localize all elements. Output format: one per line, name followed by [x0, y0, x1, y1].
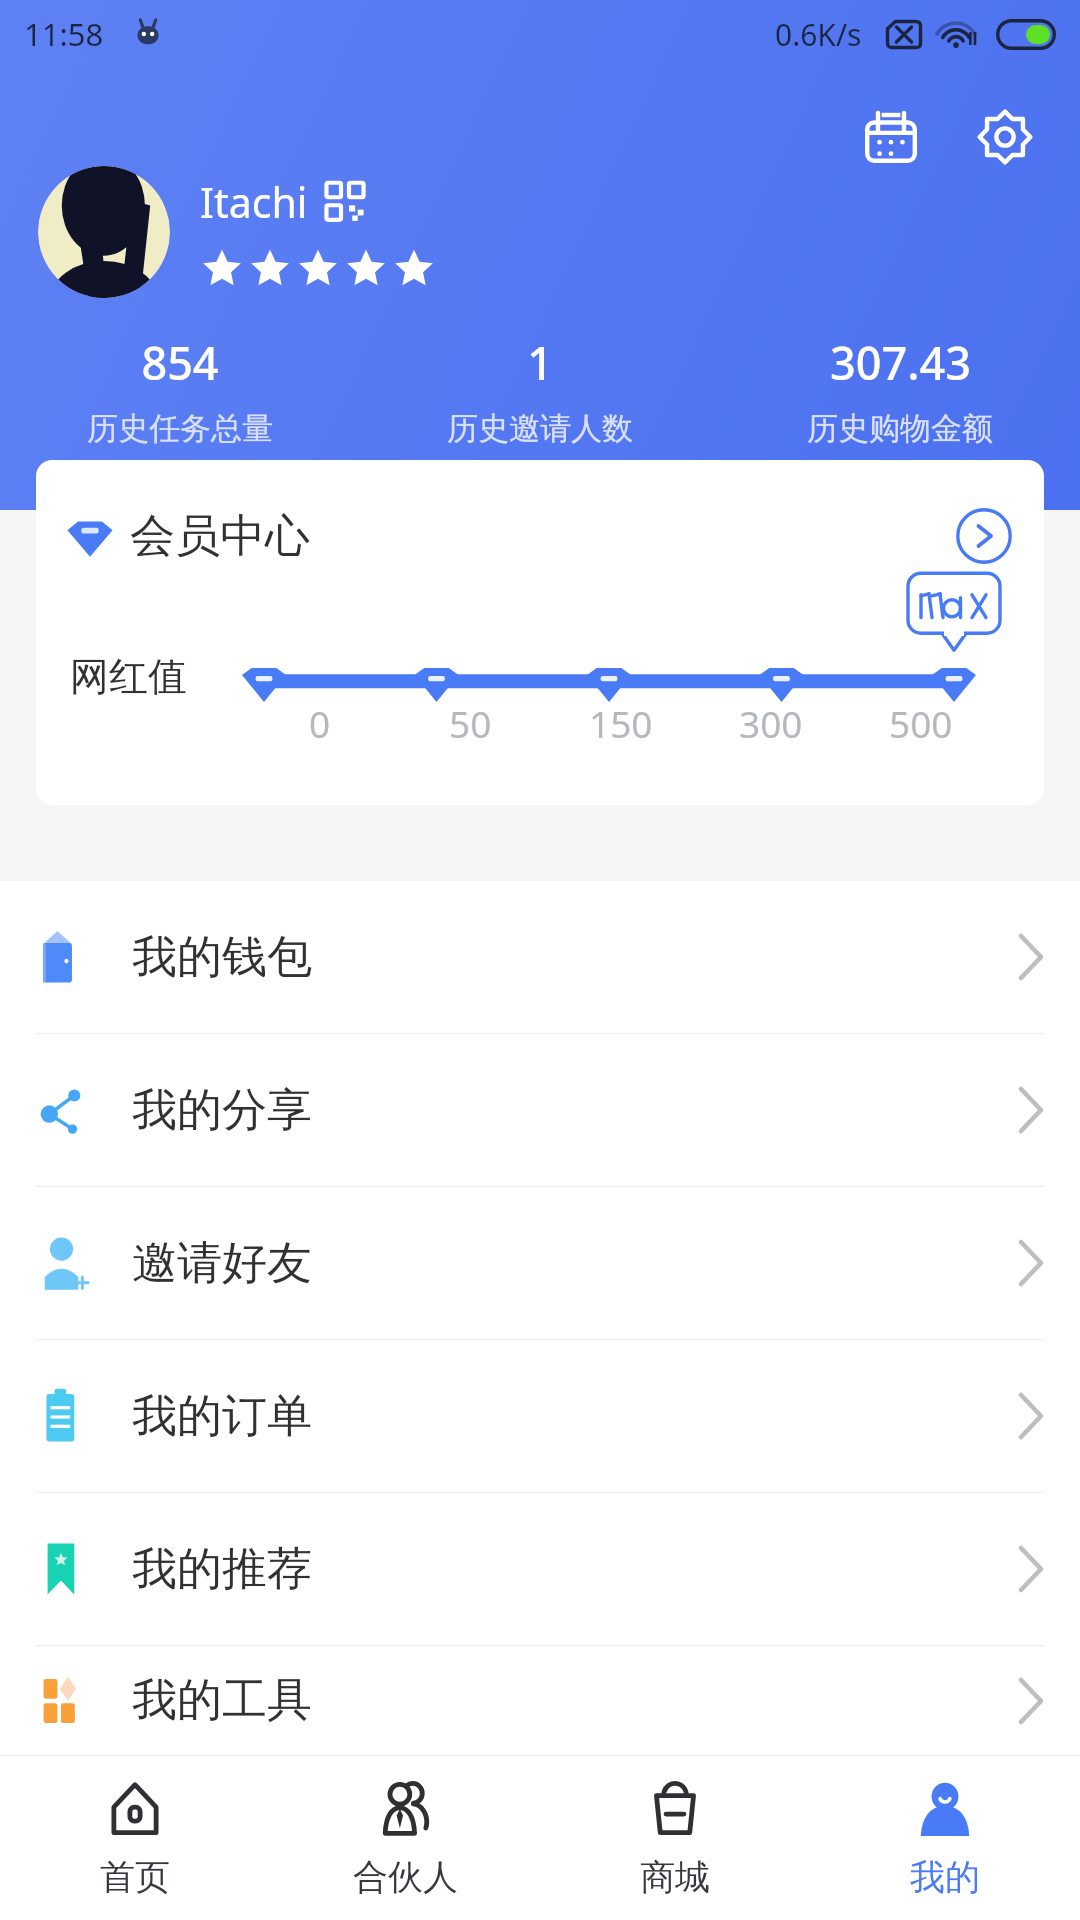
- button[interactable]: Open member center: [954, 506, 1014, 566]
- button[interactable]: 我的分享: [0, 1034, 1080, 1186]
- button[interactable]: 首页: [0, 1756, 270, 1920]
- staticText: 0: [309, 698, 331, 748]
- button[interactable]: 合伙人: [270, 1756, 540, 1920]
- staticText: 0.6K/s: [775, 14, 862, 55]
- button[interactable]: 1: [360, 330, 720, 450]
- staticText: 50: [449, 698, 492, 748]
- staticText: 网红值: [70, 652, 187, 701]
- staticText: 历史购物金额: [807, 409, 993, 448]
- button[interactable]: 我的工具: [0, 1646, 1080, 1755]
- staticText: 我的钱包: [132, 929, 312, 986]
- staticText: 我的推荐: [132, 1541, 312, 1598]
- staticText: 我的分享: [132, 1082, 312, 1139]
- staticText: 11:58: [24, 13, 104, 55]
- staticText: 邀请好友: [132, 1235, 312, 1292]
- button[interactable]: 854: [0, 330, 360, 450]
- staticText: 307.43: [830, 332, 971, 393]
- button[interactable]: 我的钱包: [0, 881, 1080, 1033]
- button[interactable]: [38, 166, 170, 298]
- staticText: 854: [141, 332, 219, 393]
- button[interactable]: QR code: [322, 179, 368, 225]
- button[interactable]: 邀请好友: [0, 1187, 1080, 1339]
- staticText: 150: [589, 698, 653, 748]
- staticText: 500: [889, 698, 953, 748]
- staticText: 历史邀请人数: [447, 409, 633, 448]
- button[interactable]: 我的订单: [0, 1340, 1080, 1492]
- staticText: 商城: [640, 1855, 710, 1899]
- staticText: 我的订单: [132, 1388, 312, 1445]
- staticText: 1: [527, 332, 553, 393]
- button[interactable]: Settings: [972, 104, 1038, 170]
- staticText: Itachi: [200, 174, 308, 230]
- staticText: 会员中心: [130, 508, 310, 565]
- button[interactable]: 我的推荐: [0, 1493, 1080, 1645]
- staticText: 我的工具: [132, 1672, 312, 1729]
- staticText: 我的: [910, 1855, 980, 1899]
- button[interactable]: 307.43: [720, 330, 1080, 450]
- button[interactable]: Calendar: [858, 104, 924, 170]
- staticText: 首页: [100, 1855, 170, 1899]
- staticText: 300: [739, 698, 803, 748]
- button[interactable]: 商城: [540, 1756, 810, 1920]
- button[interactable]: 我的: [810, 1756, 1080, 1920]
- staticText: 历史任务总量: [87, 409, 273, 448]
- staticText: 合伙人: [353, 1855, 458, 1899]
- button[interactable]: 会员中心: [36, 460, 1044, 612]
